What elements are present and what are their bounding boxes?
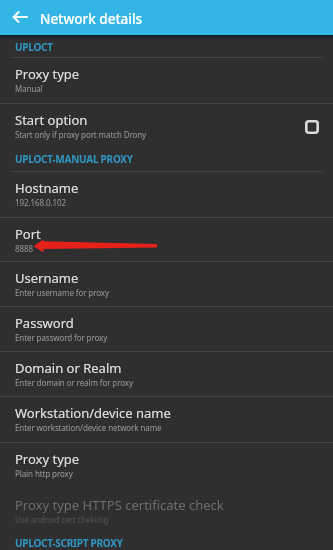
button[interactable]: Proxy type <box>0 58 333 104</box>
staticText: 192.168.0.102 <box>15 197 66 208</box>
staticText: Enter workstation/device network name <box>15 422 162 433</box>
staticText: Enter password for proxy <box>15 332 108 343</box>
staticText: Workstation/device name <box>15 404 171 422</box>
staticText: Manual <box>15 83 43 94</box>
staticText: Proxy type <box>15 450 80 468</box>
staticText: Network details <box>40 10 143 28</box>
button[interactable]: Start option <box>0 104 333 150</box>
button[interactable]: Port <box>0 218 333 262</box>
button[interactable]: Password <box>0 307 333 352</box>
button[interactable]: Domain or Realm <box>0 352 333 397</box>
staticText: Proxy type <box>15 65 80 83</box>
staticText: Proxy type HTTPS certificate check <box>15 496 224 514</box>
button[interactable]: Back <box>0 0 40 35</box>
button[interactable]: Hostname <box>0 172 333 218</box>
staticText: Enter domain or realm for proxy <box>15 377 133 388</box>
staticText: UPLOCT-MANUAL PROXY <box>15 152 133 166</box>
staticText: Domain or Realm <box>15 359 122 377</box>
staticText: Start option <box>15 111 88 129</box>
staticText: Start only if proxy port match Drony <box>15 129 147 140</box>
button[interactable]: Toggle start option <box>298 113 326 141</box>
staticText: 8888 <box>15 243 33 254</box>
staticText: UPLOCT <box>15 40 53 54</box>
staticText: Port <box>15 225 41 243</box>
button[interactable]: Proxy type HTTPS certificate check <box>0 489 333 534</box>
button[interactable]: Username <box>0 262 333 307</box>
staticText: Plain http proxy <box>15 468 73 479</box>
staticText: Use android cert chekiing <box>15 514 109 525</box>
staticText: Password <box>15 314 74 332</box>
staticText: Enter username for proxy <box>15 287 109 298</box>
button[interactable]: Proxy type <box>0 443 333 489</box>
button[interactable]: Workstation/device name <box>0 397 333 443</box>
staticText: Hostname <box>15 179 79 197</box>
staticText: UPLOCT-SCRIPT PROXY <box>15 536 123 550</box>
staticText: Username <box>15 269 79 287</box>
